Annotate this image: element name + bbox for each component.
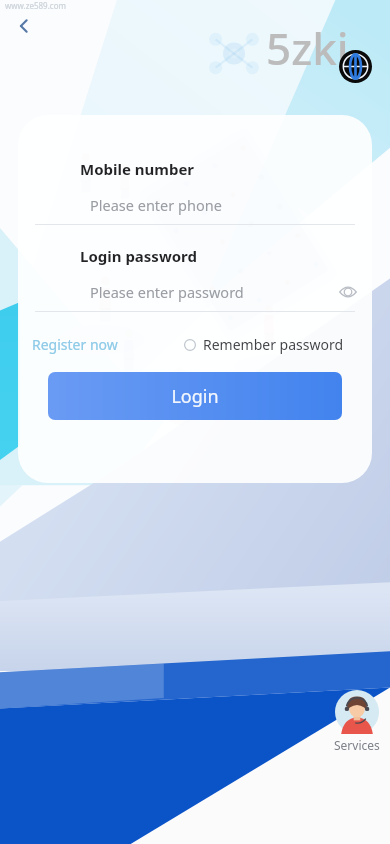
button[interactable]: Language (338, 49, 372, 83)
button[interactable]: Login (48, 372, 342, 420)
staticText: Please enter password (90, 282, 244, 302)
button[interactable]: Show password (334, 279, 362, 305)
button[interactable]: Remember password (184, 329, 344, 360)
staticText: Remember password (203, 335, 344, 354)
staticText: Services (334, 737, 380, 753)
staticText: Register now (32, 335, 118, 354)
staticText: www.ze589.com (5, 0, 66, 11)
staticText: Mobile number (80, 159, 195, 179)
button[interactable]: Please enter phone (18, 192, 372, 218)
button[interactable]: Back (4, 6, 44, 46)
button[interactable]: Register now (30, 329, 120, 360)
button[interactable]: Services (334, 690, 380, 753)
staticText: Login (171, 384, 219, 409)
staticText: Login password (80, 246, 198, 266)
button[interactable]: Please enter password (18, 279, 372, 305)
staticText: 5zki (266, 18, 349, 78)
staticText: Please enter phone (90, 195, 222, 215)
